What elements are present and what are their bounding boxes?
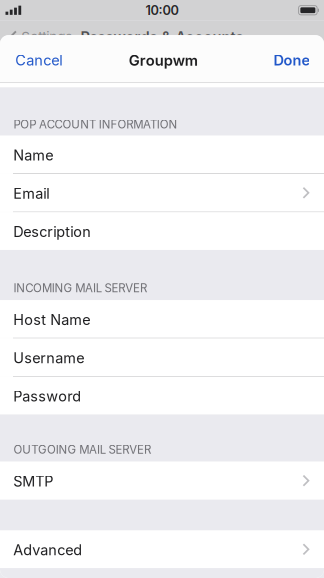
staticText: SMTP	[13, 473, 53, 490]
button[interactable]: Advanced	[0, 530, 324, 568]
staticText: Password	[13, 388, 81, 405]
button[interactable]: Password	[0, 377, 324, 414]
button[interactable]: Cancel	[0, 42, 73, 78]
staticText: Advanced	[13, 541, 82, 559]
button[interactable]: Username	[0, 338, 324, 376]
staticText: Username	[13, 349, 84, 367]
button[interactable]: Done	[263, 42, 324, 78]
staticText: Name	[13, 146, 53, 164]
staticText: Host Name	[13, 311, 90, 328]
staticText: Done	[273, 51, 310, 69]
staticText: Settings	[21, 29, 72, 45]
staticText: Cancel	[15, 51, 63, 69]
staticText: Passwords & Accounts	[80, 28, 243, 46]
staticText: OUTGOING MAIL SERVER	[13, 443, 151, 456]
button[interactable]: Email	[0, 174, 324, 212]
staticText: Groupwm	[129, 51, 198, 69]
staticText: INCOMING MAIL SERVER	[13, 281, 147, 295]
button[interactable]: SMTP	[0, 462, 324, 500]
button[interactable]: Host Name	[0, 300, 324, 338]
button[interactable]: Name	[0, 136, 324, 173]
staticText: 10:00	[145, 2, 178, 18]
staticText: POP ACCOUNT INFORMATION	[13, 117, 177, 131]
button[interactable]: Description	[0, 212, 324, 250]
staticText: Description	[13, 223, 91, 240]
staticText: Email	[13, 185, 49, 202]
